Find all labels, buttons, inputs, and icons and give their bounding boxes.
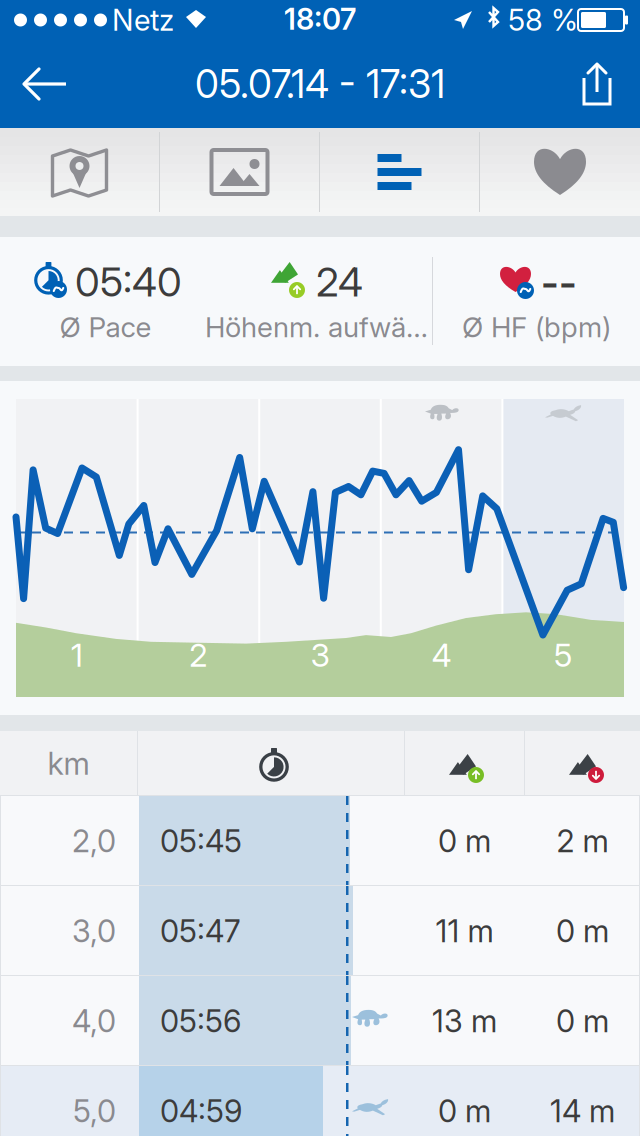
- staticText: 0 m: [556, 912, 609, 949]
- button[interactable]: Share: [560, 42, 634, 126]
- staticText: 0 m: [438, 822, 491, 859]
- staticText: 1: [71, 636, 83, 674]
- staticText: 24: [316, 258, 363, 306]
- staticText: km: [47, 745, 89, 782]
- button[interactable]: Back: [6, 42, 84, 126]
- staticText: 5: [554, 636, 573, 674]
- button[interactable]: Photos: [0, 128, 159, 216]
- staticText: 18:07: [284, 1, 356, 37]
- staticText: 0 m: [438, 1092, 491, 1129]
- staticText: 2 m: [556, 822, 608, 859]
- staticText: 05:45: [160, 822, 242, 859]
- staticText: 4,0: [72, 1002, 116, 1039]
- button[interactable]: 4,0: [0, 976, 640, 1066]
- button[interactable]: Statistics: [0, 128, 159, 216]
- staticText: 05.07.14 - 17:31: [195, 61, 445, 107]
- staticText: 05:47: [160, 912, 241, 949]
- staticText: 2: [189, 636, 208, 674]
- button[interactable]: Heart rate: [0, 128, 160, 216]
- staticText: 04:59: [160, 1092, 242, 1129]
- staticText: 2,0: [72, 822, 116, 859]
- button[interactable]: Map: [0, 128, 159, 216]
- staticText: 5,0: [73, 1092, 116, 1129]
- staticText: 4: [432, 636, 452, 674]
- staticText: 14 m: [550, 1092, 615, 1129]
- staticText: Netz: [112, 2, 174, 38]
- staticText: --: [541, 258, 577, 306]
- staticText: Ø HF (bpm): [462, 310, 611, 344]
- staticText: 3,0: [72, 912, 116, 949]
- staticText: Höhenm. aufwä…: [205, 310, 428, 344]
- button[interactable]: --: [433, 237, 640, 366]
- staticText: 3: [310, 636, 329, 674]
- button[interactable]: 3,0: [0, 886, 640, 976]
- staticText: 05:40: [75, 258, 182, 306]
- staticText: 11 m: [435, 912, 493, 949]
- staticText: 05:56: [160, 1002, 241, 1039]
- button[interactable]: 5,0: [0, 1066, 640, 1136]
- button[interactable]: 24: [212, 237, 433, 366]
- staticText: 58 %: [508, 2, 578, 38]
- button[interactable]: 2,0: [0, 796, 640, 886]
- staticText: 13 m: [432, 1002, 497, 1039]
- staticText: Ø Pace: [59, 310, 151, 344]
- staticText: 0 m: [556, 1002, 609, 1039]
- button[interactable]: 05:40: [0, 237, 211, 366]
